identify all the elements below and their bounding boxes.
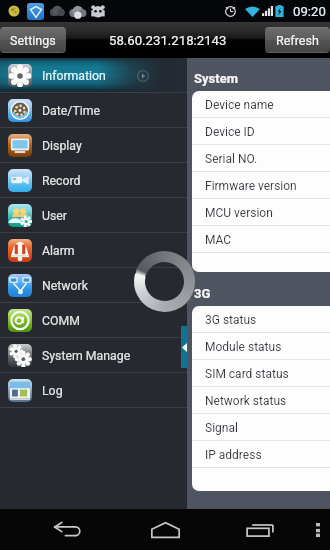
staticText: Log [42, 384, 63, 398]
staticText: Alarm [42, 244, 75, 258]
staticText: Refresh [276, 33, 319, 48]
staticText: Date/Time [42, 104, 101, 118]
staticText: Network status [205, 394, 287, 408]
staticText: SIM card status [205, 367, 289, 381]
button[interactable]: Device name [192, 91, 330, 118]
staticText: IP address [205, 448, 262, 462]
staticText: Signal [205, 421, 238, 435]
button[interactable]: Record [0, 163, 187, 198]
staticText: Information [42, 69, 106, 83]
button[interactable]: SIM card status [192, 360, 330, 387]
button[interactable]: Refresh [265, 27, 330, 53]
staticText: System Manage [42, 349, 131, 363]
button[interactable]: Log [0, 373, 187, 408]
button[interactable]: 3G status [192, 306, 330, 333]
staticText: User [42, 209, 68, 223]
staticText: 3G [194, 286, 211, 301]
button[interactable]: MAC [192, 226, 330, 253]
staticText: MAC [205, 233, 232, 247]
button[interactable]: System Manage [0, 338, 187, 373]
staticText: Network [42, 279, 88, 293]
staticText: Record [42, 174, 81, 188]
button[interactable]: More options [305, 509, 330, 550]
staticText: 58.60.231.218:2143 [109, 33, 227, 48]
staticText: Device name [205, 98, 274, 112]
button[interactable]: Module status [192, 333, 330, 360]
button[interactable]: Display [0, 128, 187, 163]
staticText: Device ID [205, 125, 255, 139]
button[interactable]: Serial NO. [192, 145, 330, 172]
button[interactable]: Date/Time [0, 93, 187, 128]
button[interactable]: Network [0, 268, 187, 303]
button[interactable]: MCU version [192, 199, 330, 226]
button[interactable]: Device ID [192, 118, 330, 145]
button[interactable]: Collapse panel [181, 326, 188, 368]
staticText: 09:20 [293, 4, 326, 19]
staticText: 3G status [205, 313, 257, 327]
staticText: Display [42, 139, 82, 153]
button[interactable]: User [0, 198, 187, 233]
staticText: COMM [42, 314, 80, 328]
button[interactable]: Settings [0, 27, 66, 53]
button[interactable]: IP address [192, 441, 330, 468]
button[interactable]: Recent apps [235, 509, 285, 550]
button[interactable]: Firmware version [192, 172, 330, 199]
staticText: Module status [205, 340, 282, 354]
button[interactable]: Network status [192, 387, 330, 414]
staticText: System [194, 71, 238, 86]
button[interactable]: Information [0, 58, 187, 93]
staticText: MCU version [205, 206, 273, 220]
button[interactable]: Back [44, 509, 94, 550]
staticText: Serial NO. [205, 152, 258, 166]
staticText: Firmware version [205, 179, 297, 193]
button[interactable]: Home [140, 509, 190, 550]
button[interactable]: Alarm [0, 233, 187, 268]
staticText: Settings [10, 33, 56, 48]
button[interactable]: COMM [0, 303, 187, 338]
button[interactable]: Signal [192, 414, 330, 441]
